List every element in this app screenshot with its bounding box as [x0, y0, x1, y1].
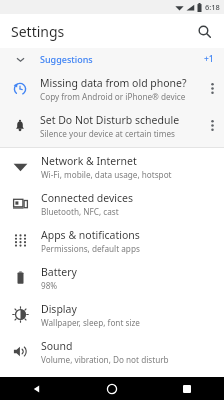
button[interactable]: Suggestions: [0, 48, 224, 70]
button[interactable]: Sound: [0, 333, 224, 370]
staticText: Battery: [41, 265, 77, 279]
button[interactable]: Set Do Not Disturb schedule: [0, 107, 224, 144]
button[interactable]: More options: [200, 70, 224, 107]
button[interactable]: Recent apps: [149, 377, 224, 400]
staticText: Suggestions: [40, 53, 93, 65]
button[interactable]: Connected devices: [0, 185, 224, 222]
staticText: Bluetooth, NFC, cast: [41, 206, 119, 217]
staticText: Display: [41, 302, 77, 316]
staticText: +1: [204, 53, 214, 65]
button[interactable]: Home: [74, 377, 149, 400]
staticText: 98%: [41, 280, 58, 291]
staticText: Silence your device at certain times: [40, 128, 175, 139]
staticText: Wi-Fi, mobile, data usage, hotspot: [41, 169, 172, 180]
button[interactable]: Search: [192, 19, 216, 43]
button[interactable]: Apps & notifications: [0, 222, 224, 259]
button[interactable]: Battery: [0, 259, 224, 296]
staticText: Volume, vibration, Do not disturb: [41, 354, 169, 365]
staticText: Missing data from old phone?: [40, 76, 187, 90]
staticText: Apps & notifications: [41, 228, 140, 242]
staticText: Network & Internet: [41, 154, 137, 168]
button[interactable]: Display: [0, 296, 224, 333]
button[interactable]: Back: [0, 377, 74, 400]
staticText: Wallpaper, sleep, font size: [41, 317, 140, 328]
staticText: Sound: [41, 339, 73, 353]
button[interactable]: Network & Internet: [0, 148, 224, 185]
staticText: 6:18: [205, 2, 220, 12]
staticText: Settings: [11, 22, 65, 41]
staticText: Connected devices: [41, 191, 134, 205]
button[interactable]: More options: [200, 107, 224, 144]
button[interactable]: Missing data from old phone?: [0, 70, 224, 107]
staticText: Copy from Android or iPhone® device: [40, 91, 186, 102]
staticText: Permissions, default apps: [41, 243, 140, 254]
staticText: Set Do Not Disturb schedule: [40, 113, 180, 127]
